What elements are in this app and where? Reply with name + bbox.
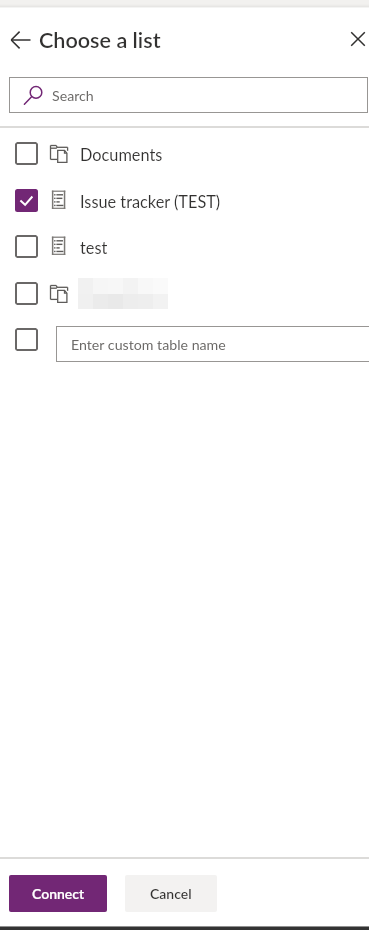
staticText: Connect [32,885,85,902]
button[interactable]: Selected [15,189,38,212]
staticText: test [80,238,108,258]
staticText: Documents [80,145,163,165]
button[interactable]: Not selected [15,282,38,305]
button[interactable]: Enter custom table name [56,326,369,362]
staticText: Search [52,87,94,104]
button[interactable]: Not selected [0,223,369,269]
button[interactable]: Back [8,27,34,53]
staticText: Issue tracker (TEST) [80,192,221,212]
staticText: Enter custom table name [71,336,226,353]
staticText: Choose a list [39,27,161,53]
button[interactable]: Not selected [0,130,369,176]
button[interactable]: Selected [0,177,369,223]
button[interactable]: Close [345,26,369,52]
staticText: Cancel [150,885,192,902]
button[interactable]: Not selected [15,328,38,351]
button[interactable]: Connect [9,875,107,912]
button[interactable]: Not selected [0,270,369,316]
button[interactable]: Search [9,77,368,113]
button[interactable]: Not selected [15,235,38,258]
button[interactable]: Cancel [125,875,217,912]
button[interactable]: Not selected [15,142,38,165]
